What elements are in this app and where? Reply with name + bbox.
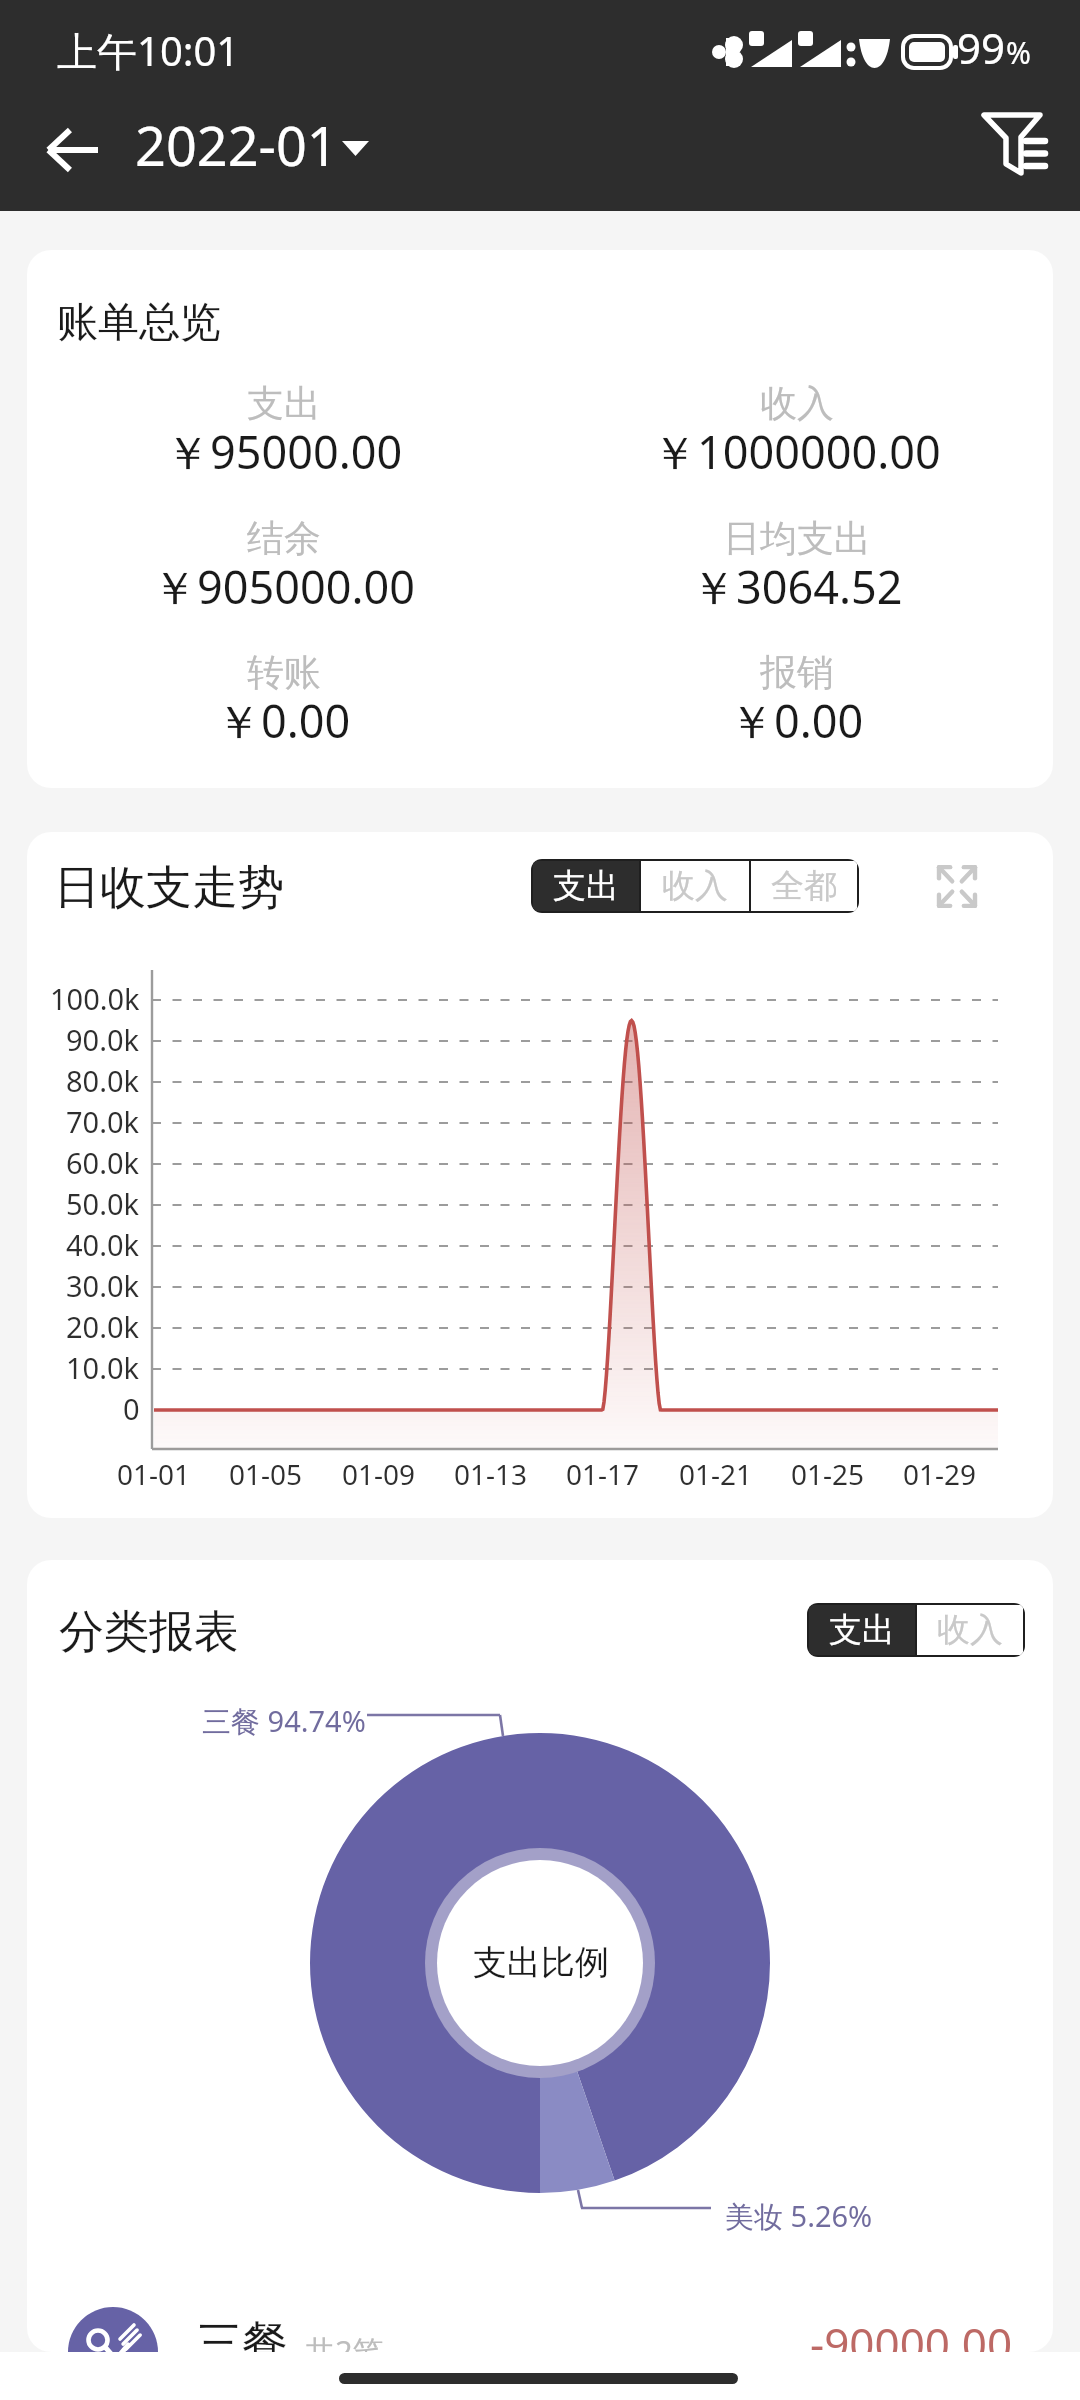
staticText: 01-25 [791,1455,865,1493]
staticText: 01-17 [566,1455,640,1493]
button[interactable]: 2022-01 [135,95,369,195]
staticText: 01-29 [903,1455,977,1493]
staticText: 20.0k [66,1307,140,1346]
staticText: -90000.00 [810,2313,1013,2352]
staticText: 支出 [829,1609,895,1651]
staticText: 全都 [771,865,837,907]
staticText: 0 [123,1389,140,1428]
staticText: ￥0.00 [216,690,351,751]
staticText: 01-01 [117,1455,191,1493]
staticText: 分类报表 [59,1604,239,1661]
staticText: 01-21 [679,1455,753,1493]
staticText: 支出 [553,865,619,907]
staticText: 01-13 [454,1455,528,1493]
staticText: 40.0k [66,1225,140,1264]
button[interactable]: 支出 [809,1605,915,1655]
staticText: 支出 [247,380,321,427]
staticText: 50.0k [66,1184,140,1223]
staticText: 收入 [937,1609,1003,1651]
staticText: 三餐 [196,2315,288,2352]
staticText: ￥0.00 [729,690,864,751]
staticText: 日均支出 [723,515,871,562]
staticText: 三餐 94.74% [202,1701,366,1741]
button[interactable]: Filter [969,98,1059,188]
staticText: 转账 [247,649,321,696]
staticText: 99 [957,19,1006,76]
staticText: 报销 [760,649,834,696]
staticText: 支出比例 [473,1941,609,1984]
staticText: 2022-01 [135,108,338,182]
staticText: 01-09 [342,1455,416,1493]
button[interactable]: 三餐 [27,2260,1053,2352]
staticText: 30.0k [66,1266,140,1305]
staticText: 10.0k [66,1348,140,1387]
button[interactable]: Back [22,100,122,200]
button[interactable]: 收入 [641,861,749,911]
staticText: 收入 [760,380,834,427]
staticText: ￥905000.00 [152,556,415,617]
staticText: 90.0k [66,1020,140,1059]
staticText: 收入 [662,865,728,907]
button[interactable]: Expand chart [923,852,991,920]
staticText: 60.0k [66,1143,140,1182]
staticText: ￥95000.00 [165,421,403,482]
staticText: 结余 [247,515,321,562]
staticText: % [1006,32,1031,73]
staticText: 共2笔 [304,2330,384,2352]
button[interactable]: 全都 [751,861,857,911]
staticText: ￥1000000.00 [652,421,941,482]
button[interactable]: 收入 [917,1605,1023,1655]
button[interactable]: 支出 [533,861,639,911]
staticText: ￥3064.52 [691,556,903,617]
staticText: 账单总览 [57,297,221,349]
staticText: 上午10:01 [57,23,240,78]
staticText: 美妆 5.26% [725,2196,873,2236]
staticText: 01-05 [229,1455,303,1493]
staticText: 100.0k [50,979,140,1018]
staticText: 80.0k [66,1061,140,1100]
staticText: 日收支走势 [54,859,284,917]
staticText: 70.0k [66,1102,140,1141]
